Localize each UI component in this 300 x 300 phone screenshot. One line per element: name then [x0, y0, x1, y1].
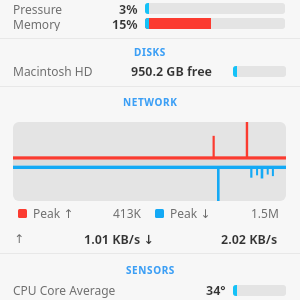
staticText: 1.5M — [251, 205, 279, 221]
button[interactable]: Pressure — [0, 1, 300, 16]
staticText: Pressure — [13, 1, 63, 16]
button[interactable] — [13, 122, 286, 201]
staticText: CPU Core Average — [13, 282, 116, 298]
button[interactable]: Macintosh HD — [0, 62, 300, 80]
staticText: NETWORK — [123, 95, 178, 109]
staticText: Peak ↓ — [170, 205, 211, 221]
staticText: 34° — [206, 282, 226, 299]
staticText: 1.01 KB/s ↓ — [84, 231, 155, 248]
button[interactable]: CPU Core Average — [0, 281, 300, 299]
staticText: 3% — [119, 1, 138, 16]
staticText: Macintosh HD — [13, 63, 93, 79]
staticText: Memory — [13, 16, 61, 31]
staticText: Peak ↑ — [33, 205, 74, 221]
button[interactable]: Memory — [0, 16, 300, 31]
staticText: 413K — [113, 205, 142, 221]
staticText: ↑ — [14, 232, 25, 246]
staticText: 950.2 GB free — [131, 63, 213, 80]
staticText: DISKS — [134, 45, 166, 59]
staticText: 15% — [112, 16, 138, 31]
staticText: SENSORS — [126, 263, 175, 277]
staticText: 2.02 KB/s — [221, 231, 278, 248]
